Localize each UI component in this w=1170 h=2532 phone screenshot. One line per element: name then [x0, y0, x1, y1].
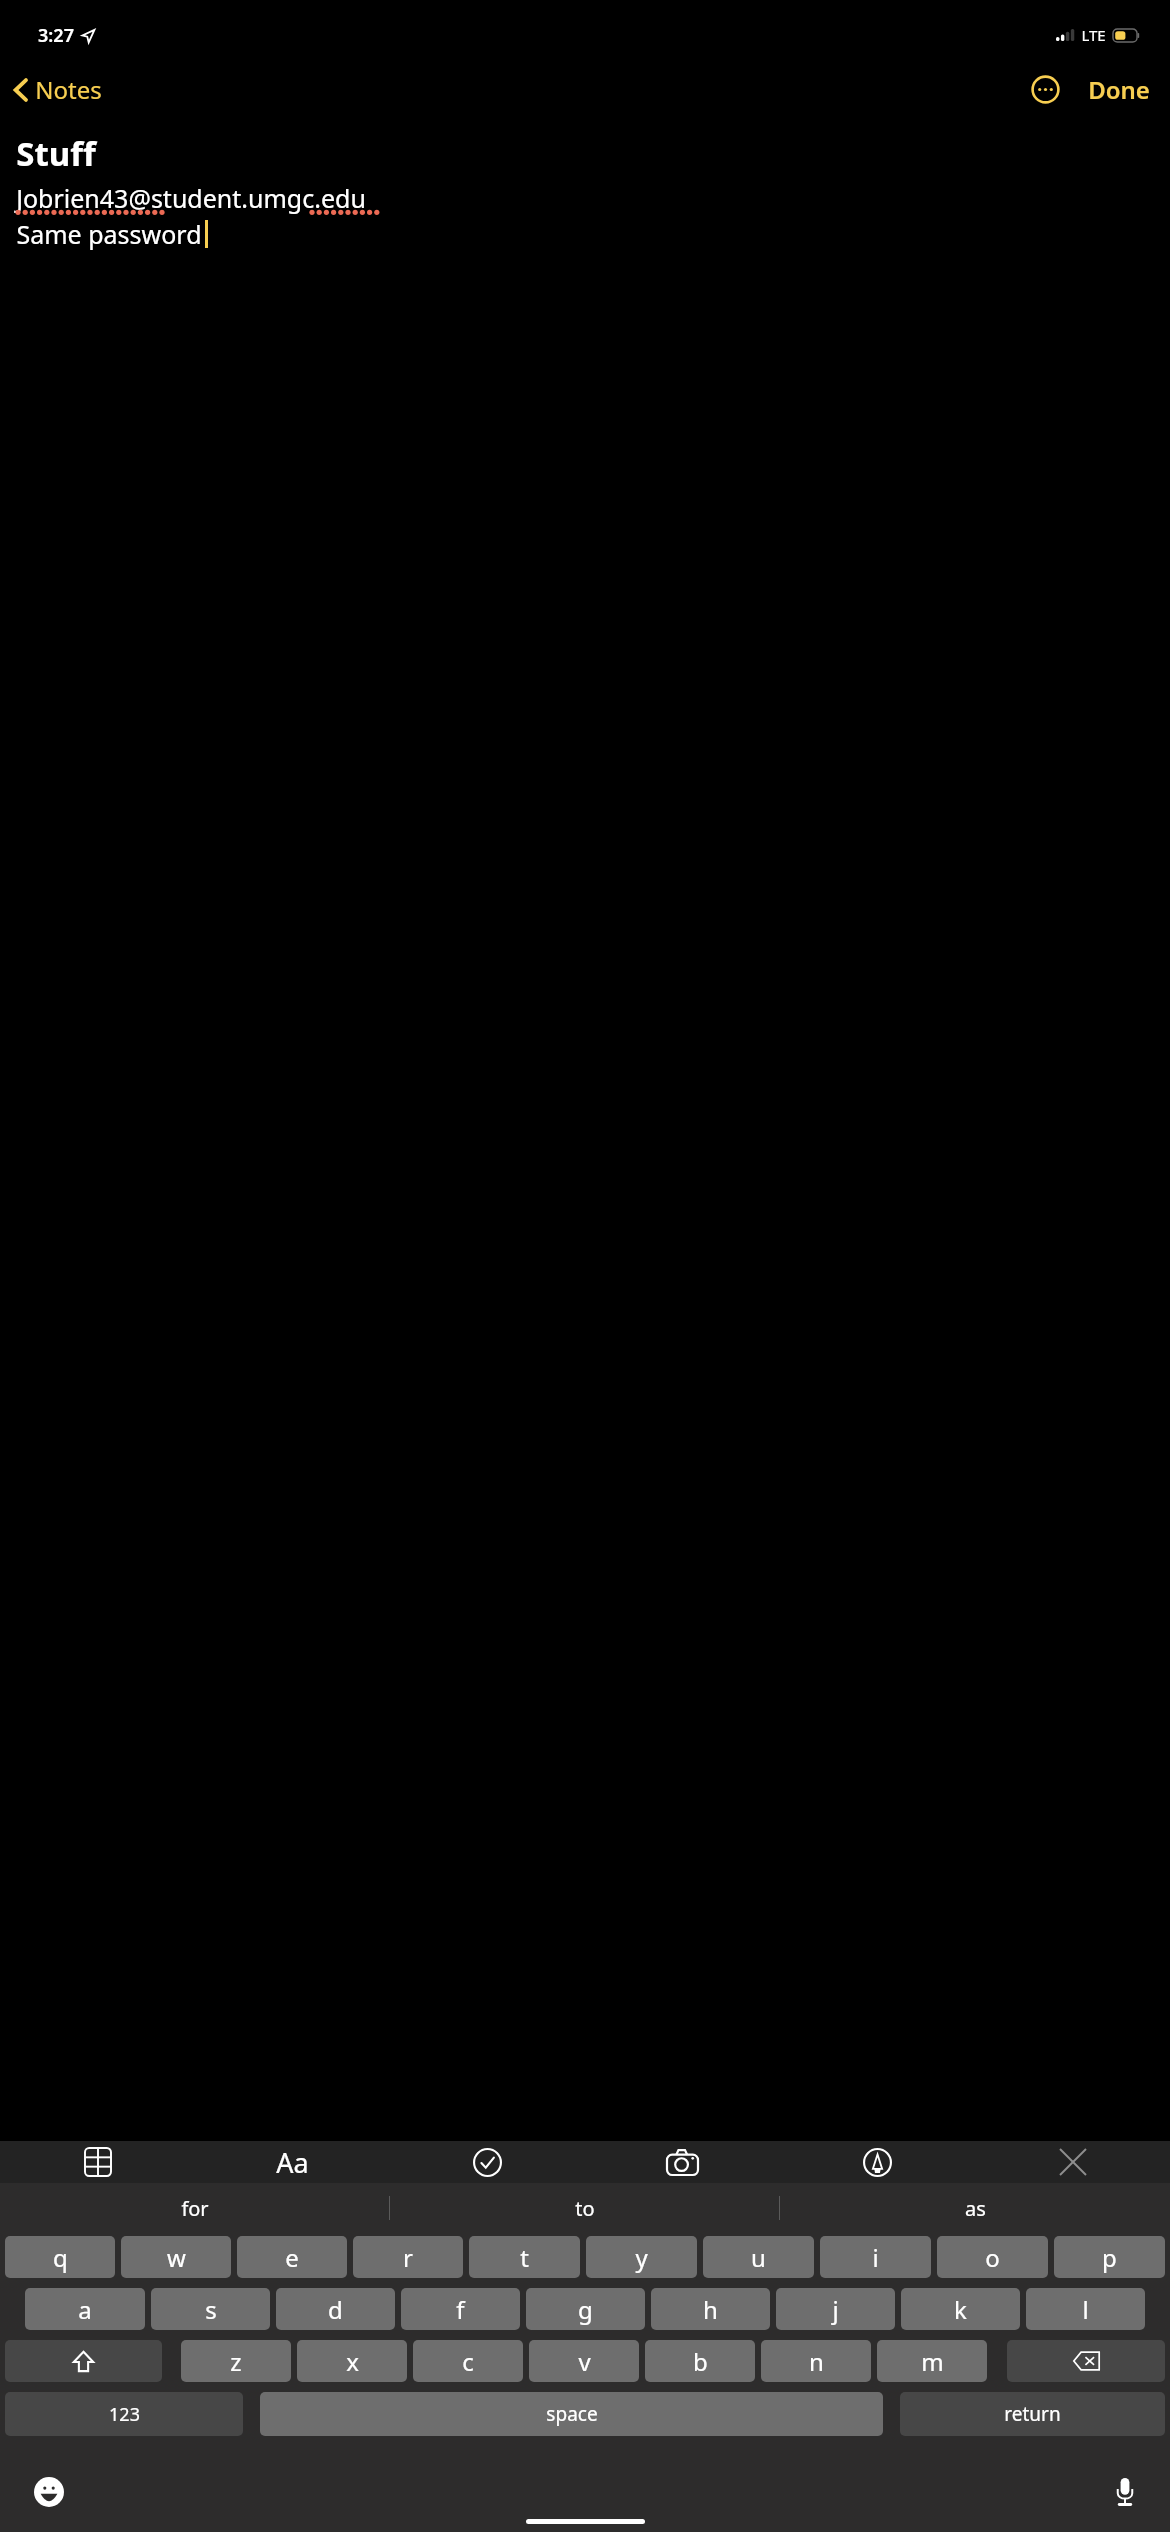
- staticText: as: [965, 2195, 986, 2222]
- staticText: x: [346, 2345, 359, 2378]
- button[interactable]: More options: [1021, 65, 1070, 114]
- button[interactable]: i: [820, 2236, 931, 2278]
- staticText: return: [1004, 2401, 1061, 2427]
- button[interactable]: to: [390, 2183, 780, 2233]
- staticText: m: [921, 2345, 944, 2378]
- button[interactable]: Insert table: [0, 2141, 195, 2183]
- button[interactable]: Backspace: [1007, 2340, 1165, 2382]
- staticText: space: [546, 2401, 598, 2427]
- staticText: e: [285, 2241, 299, 2274]
- staticText: to: [575, 2195, 595, 2222]
- staticText: for: [181, 2195, 209, 2222]
- staticText: d: [328, 2293, 343, 2326]
- button[interactable]: Checklist: [390, 2141, 585, 2183]
- staticText: u: [751, 2241, 766, 2274]
- button[interactable]: Notes: [0, 67, 116, 112]
- button[interactable]: d: [276, 2288, 395, 2330]
- staticText: f: [456, 2293, 465, 2326]
- button[interactable]: u: [703, 2236, 814, 2278]
- staticText: o: [985, 2241, 1000, 2274]
- button[interactable]: Camera: [585, 2141, 780, 2183]
- staticText: c: [462, 2345, 474, 2378]
- button[interactable]: Dictate: [1108, 2471, 1142, 2513]
- staticText: n: [809, 2345, 824, 2378]
- button[interactable]: Text format: [195, 2141, 390, 2183]
- staticText: Aa: [276, 2144, 309, 2181]
- button[interactable]: e: [237, 2236, 347, 2278]
- button[interactable]: Emoji: [28, 2471, 70, 2513]
- button[interactable]: b: [645, 2340, 755, 2382]
- staticText: b: [693, 2345, 708, 2378]
- staticText: a: [78, 2293, 92, 2326]
- staticText: 123: [109, 2402, 140, 2427]
- staticText: z: [230, 2345, 242, 2378]
- button[interactable]: x: [297, 2340, 407, 2382]
- staticText: t: [520, 2241, 529, 2274]
- button[interactable]: k: [901, 2288, 1020, 2330]
- staticText: y: [635, 2241, 648, 2274]
- staticText: Notes: [35, 73, 102, 106]
- button[interactable]: m: [877, 2340, 987, 2382]
- staticText: k: [954, 2293, 967, 2326]
- button[interactable]: r: [353, 2236, 463, 2278]
- button[interactable]: w: [121, 2236, 231, 2278]
- staticText: h: [703, 2293, 718, 2326]
- staticText: Jobrien43@student.umgc.edu: [16, 181, 366, 215]
- staticText: g: [578, 2293, 593, 2326]
- button[interactable]: j: [776, 2288, 895, 2330]
- button[interactable]: t: [469, 2236, 580, 2278]
- button[interactable]: q: [5, 2236, 115, 2278]
- button[interactable]: o: [937, 2236, 1048, 2278]
- button[interactable]: v: [529, 2340, 639, 2382]
- button[interactable]: Shift: [5, 2340, 162, 2382]
- button[interactable]: Stuff: [0, 117, 1170, 2141]
- button[interactable]: f: [401, 2288, 520, 2330]
- button[interactable]: Done: [1076, 65, 1162, 114]
- button[interactable]: z: [181, 2340, 291, 2382]
- staticText: q: [53, 2241, 68, 2274]
- staticText: r: [403, 2241, 413, 2274]
- button[interactable]: Markup: [780, 2141, 975, 2183]
- button[interactable]: Close keyboard: [975, 2141, 1170, 2183]
- button[interactable]: space: [260, 2392, 883, 2436]
- staticText: v: [578, 2345, 591, 2378]
- staticText: s: [205, 2293, 217, 2326]
- button[interactable]: l: [1026, 2288, 1145, 2330]
- staticText: Same password: [16, 217, 202, 251]
- button[interactable]: y: [586, 2236, 697, 2278]
- button[interactable]: s: [151, 2288, 270, 2330]
- staticText: LTE: [1081, 25, 1106, 45]
- button[interactable]: return: [900, 2392, 1165, 2436]
- staticText: w: [167, 2241, 186, 2274]
- staticText: Stuff: [16, 131, 96, 176]
- staticText: i: [872, 2241, 879, 2274]
- button[interactable]: 123: [5, 2392, 243, 2436]
- staticText: Done: [1088, 73, 1150, 106]
- button[interactable]: p: [1054, 2236, 1165, 2278]
- staticText: p: [1102, 2241, 1117, 2274]
- button[interactable]: g: [526, 2288, 645, 2330]
- button[interactable]: c: [413, 2340, 523, 2382]
- button[interactable]: h: [651, 2288, 770, 2330]
- button[interactable]: a: [25, 2288, 145, 2330]
- staticText: 3:27: [38, 23, 74, 48]
- button[interactable]: n: [761, 2340, 871, 2382]
- button[interactable]: as: [780, 2183, 1170, 2233]
- staticText: j: [832, 2293, 839, 2326]
- staticText: l: [1082, 2293, 1089, 2326]
- button[interactable]: for: [0, 2183, 390, 2233]
